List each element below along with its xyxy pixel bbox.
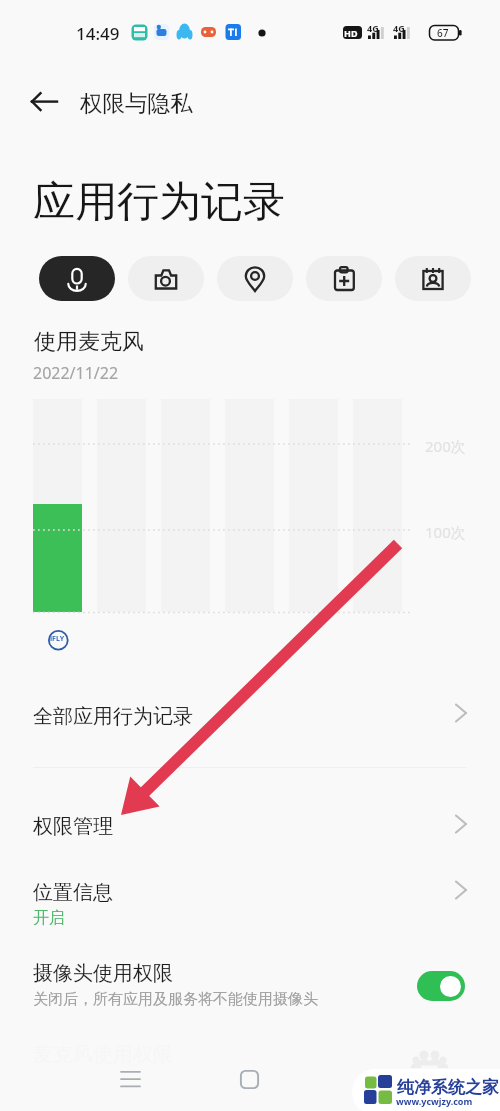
button[interactable]: Back (16, 78, 72, 126)
button[interactable]: Location (217, 256, 293, 301)
staticText: 200次 (425, 436, 466, 456)
staticText: HD (344, 27, 358, 39)
staticText: 使用麦克风 (34, 328, 144, 356)
staticText: 100次 (425, 522, 466, 542)
staticText: 纯净系统之家 (397, 1077, 499, 1098)
button[interactable]: Recent apps (106, 1055, 154, 1103)
staticText: 14:49 (76, 22, 120, 45)
staticText: 位置信息 (33, 880, 113, 905)
staticText: 开启 (33, 908, 65, 928)
button[interactable]: 摄像头使用权限 (0, 943, 500, 997)
staticText: iFLY (50, 634, 65, 644)
staticText: www.ycwjzy.com (396, 1095, 473, 1107)
button[interactable]: Microphone (39, 256, 115, 301)
button[interactable]: 全部应用行为记录 (0, 686, 500, 740)
staticText: 关闭后，所有应用及服务将不能使用摄像头 (33, 990, 318, 1009)
staticText: 2022/11/22 (33, 362, 119, 384)
button[interactable]: Clipboard (306, 256, 382, 301)
button[interactable]: Contacts (395, 256, 471, 301)
staticText: 权限管理 (33, 814, 113, 839)
staticText: 摄像头使用权限 (33, 961, 173, 986)
staticText: 67 (437, 26, 449, 40)
button[interactable]: Home (225, 1055, 273, 1103)
button[interactable]: 权限管理 (0, 796, 500, 850)
staticText: 4G (393, 22, 405, 34)
button[interactable]: Camera permission toggle (417, 971, 465, 1001)
staticText: 全部应用行为记录 (33, 704, 193, 729)
staticText: 4G (367, 22, 379, 34)
button[interactable]: Camera (128, 256, 204, 301)
button[interactable]: 位置信息 (0, 862, 500, 916)
staticText: 应用行为记录 (33, 176, 285, 229)
staticText: 权限与隐私 (80, 89, 193, 117)
